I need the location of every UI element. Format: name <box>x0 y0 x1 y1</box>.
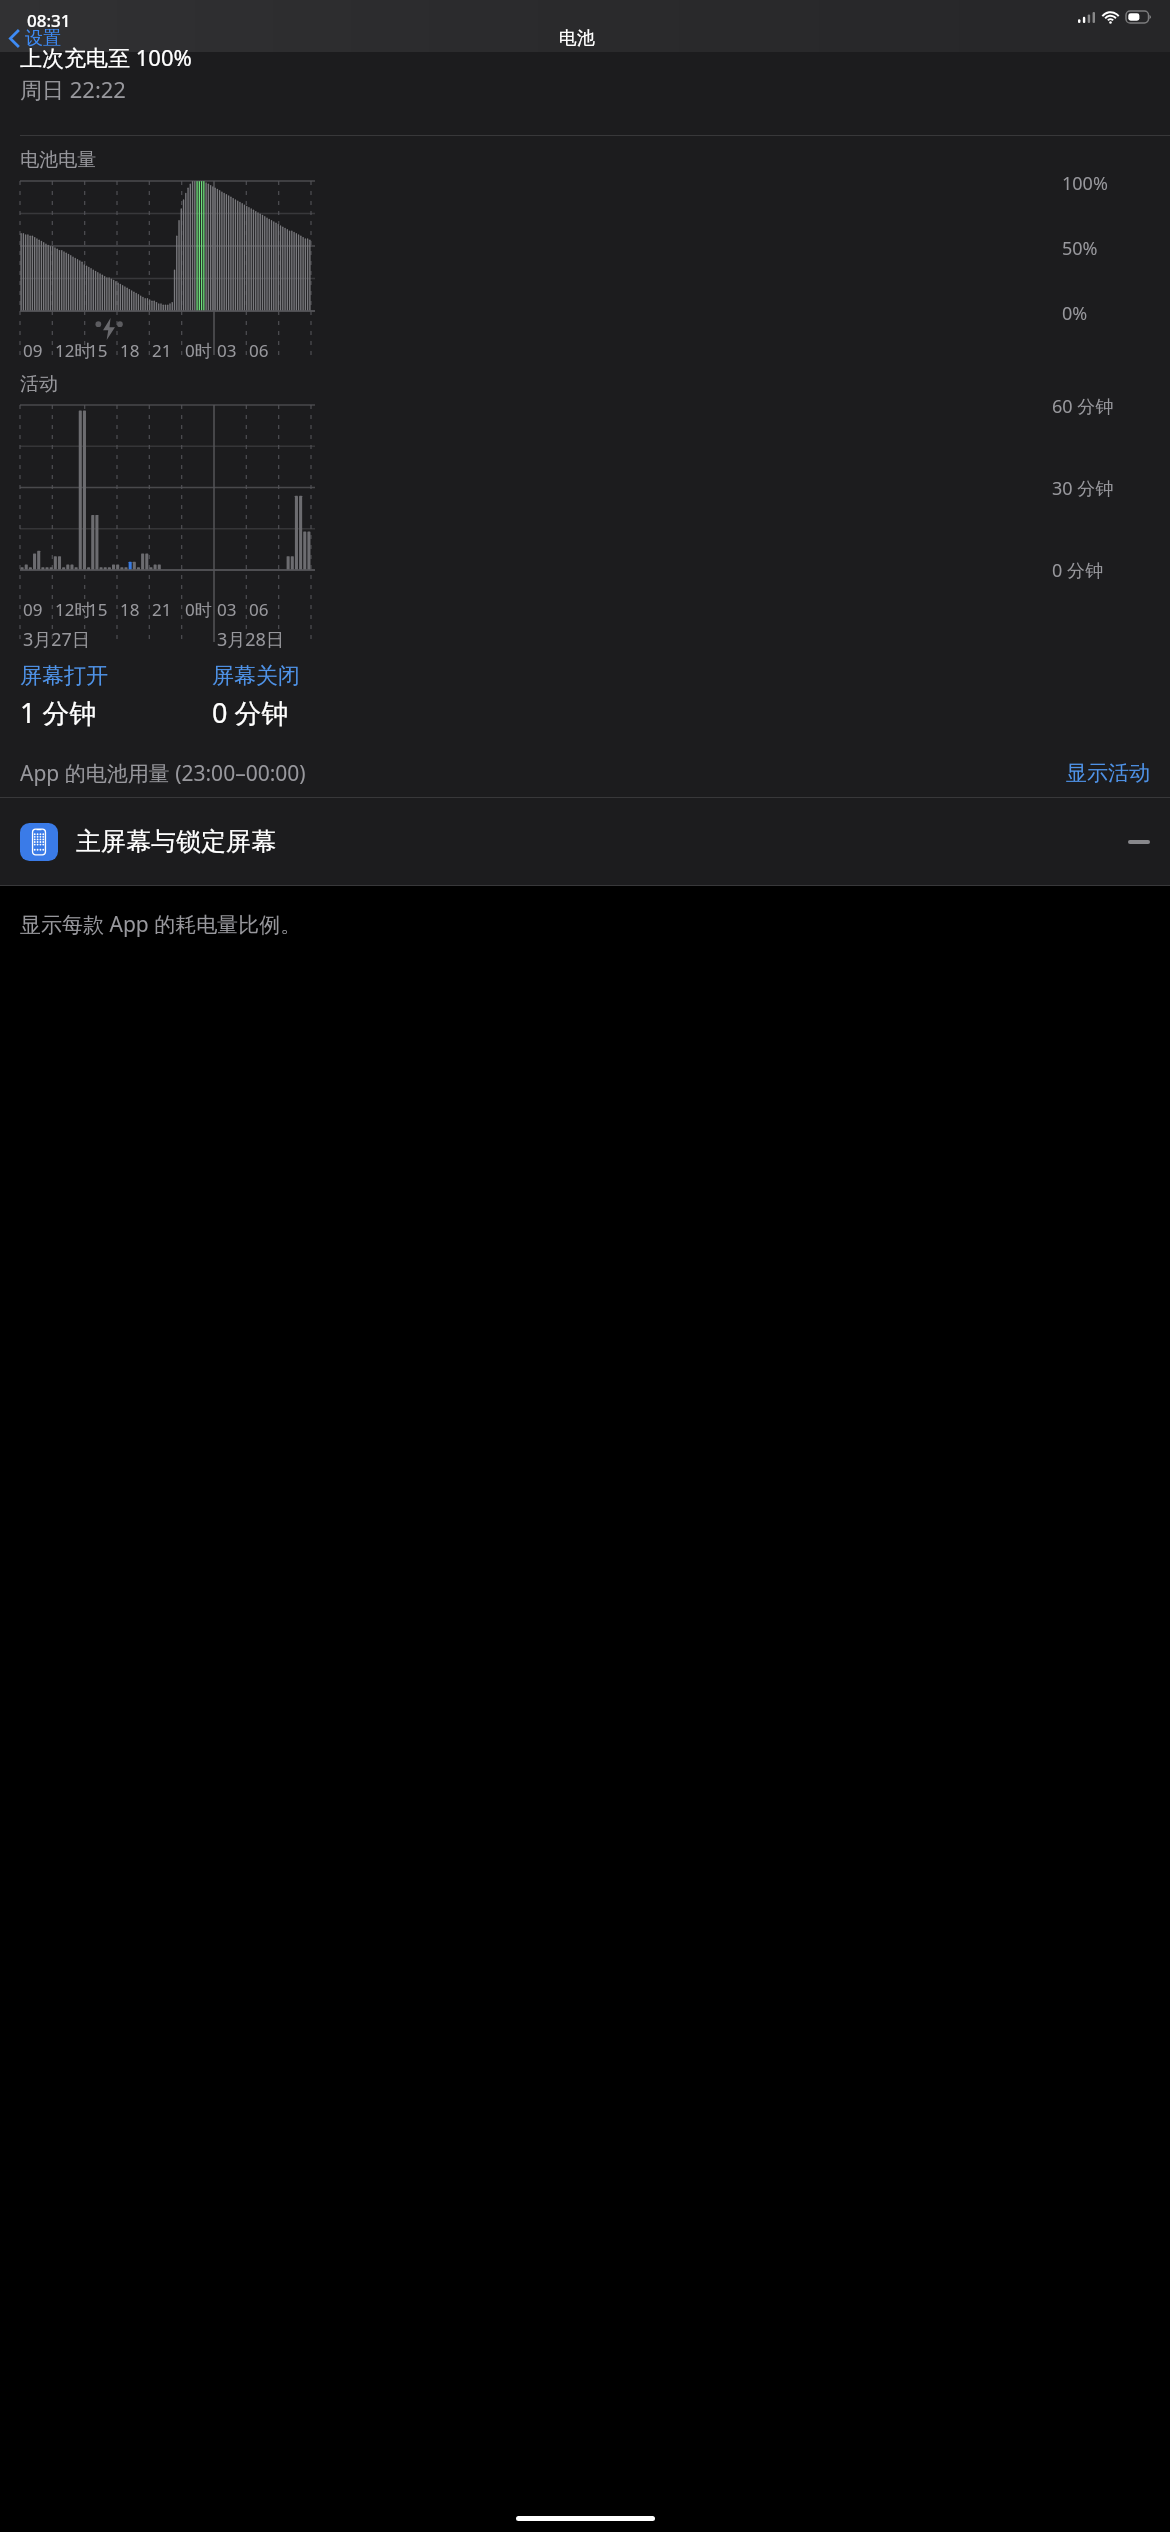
staticText: 0时 <box>185 339 212 361</box>
staticText: 06 <box>249 598 269 620</box>
staticText: 06 <box>249 339 269 361</box>
staticText: 0 分钟 <box>212 694 289 731</box>
staticText: 电池 <box>559 27 595 50</box>
staticText: 电池电量 <box>20 148 96 172</box>
staticText: 活动 <box>20 372 58 396</box>
staticText: 15 <box>88 339 108 361</box>
staticText: 21 <box>152 339 172 361</box>
staticText: 0 分钟 <box>1052 558 1103 583</box>
staticText: App 的电池用量 (23:00–00:00) <box>20 759 306 788</box>
staticText: 屏幕关闭 <box>212 662 300 690</box>
staticText: 03 <box>217 339 237 361</box>
staticText: 09 <box>23 598 43 620</box>
button[interactable]: 设置 <box>0 24 71 52</box>
staticText: 50% <box>1062 236 1098 261</box>
staticText: 03 <box>217 598 237 620</box>
staticText: 12时 <box>55 339 92 361</box>
staticText: 3月28日 <box>217 627 284 652</box>
staticText: 60 分钟 <box>1052 394 1114 419</box>
staticText: 1 分钟 <box>20 694 97 731</box>
button[interactable]: 主屏幕与锁定屏幕 <box>0 798 1170 885</box>
other: No battery usage <box>1128 840 1150 844</box>
staticText: 上次充电至 100% <box>20 42 192 72</box>
staticText: 18 <box>120 339 140 361</box>
staticText: 30 分钟 <box>1052 476 1114 501</box>
staticText: 15 <box>88 598 108 620</box>
staticText: 0% <box>1062 301 1088 326</box>
staticText: 08:31 <box>27 9 71 32</box>
button[interactable]: 屏幕关闭 <box>212 662 300 731</box>
button[interactable]: 屏幕打开 <box>20 662 212 731</box>
staticText: 100% <box>1062 171 1108 196</box>
button[interactable]: 显示活动 <box>1066 760 1150 786</box>
staticText: 屏幕打开 <box>20 662 108 690</box>
staticText: 周日 22:22 <box>20 74 126 104</box>
staticText: 显示活动 <box>1066 760 1150 786</box>
staticText: 主屏幕与锁定屏幕 <box>76 826 276 857</box>
staticText: 设置 <box>25 27 61 50</box>
staticText: 09 <box>23 339 43 361</box>
staticText: 显示每款 App 的耗电量比例。 <box>20 910 302 939</box>
staticText: 21 <box>152 598 172 620</box>
staticText: 12时 <box>55 598 92 620</box>
staticText: 0时 <box>185 598 212 620</box>
staticText: 18 <box>120 598 140 620</box>
staticText: 3月27日 <box>23 627 90 652</box>
